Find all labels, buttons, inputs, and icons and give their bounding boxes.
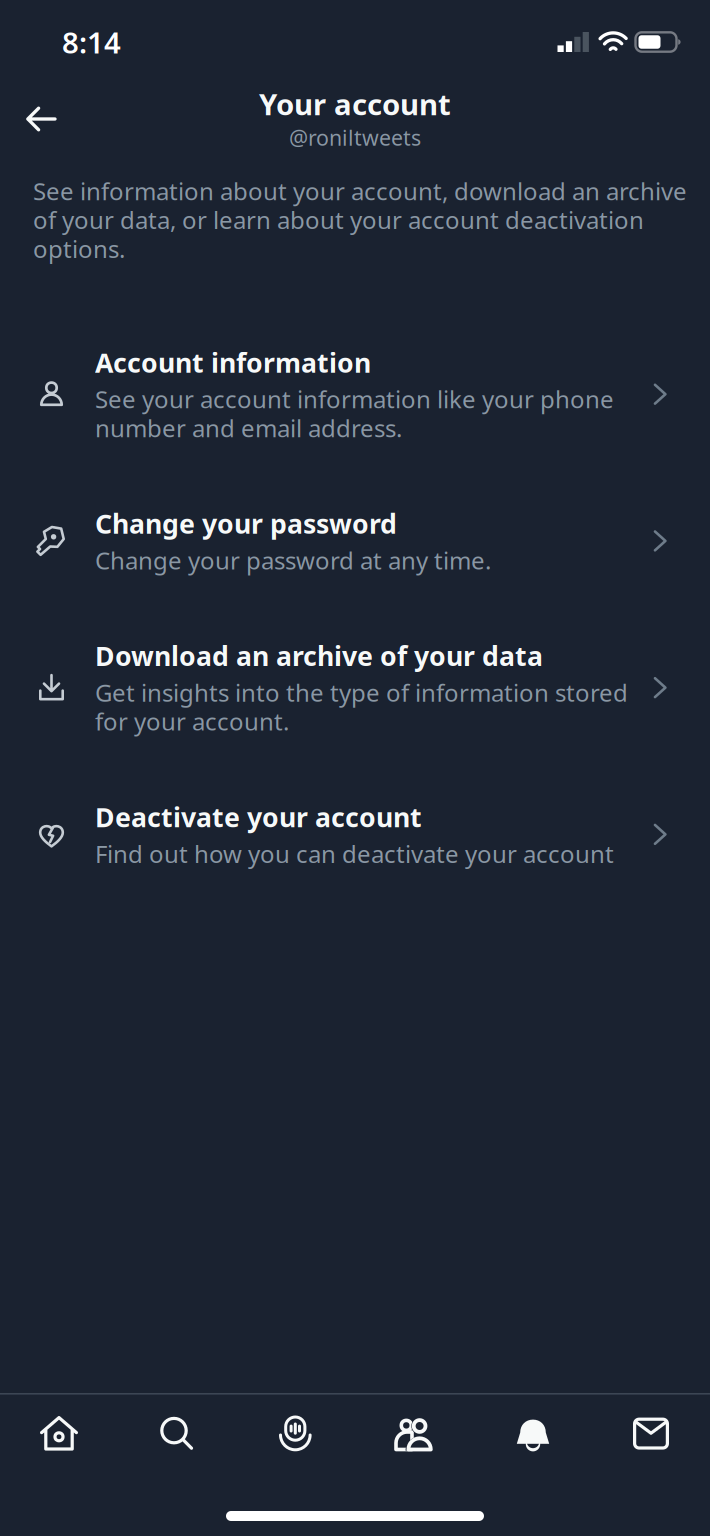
staticText: Your account [259,84,451,123]
button[interactable]: Back [0,91,77,147]
button[interactable]: Search [118,1395,236,1473]
staticText: @roniltweets [289,123,421,152]
staticText: Download an archive of your data [95,638,543,673]
button[interactable]: Messages [592,1395,710,1473]
button[interactable]: Account information [0,314,710,475]
button[interactable]: Download an archive of your data [0,607,710,768]
button[interactable]: Spaces [236,1395,355,1473]
button[interactable]: Change your password [0,475,710,607]
staticText: Change your password [95,506,397,541]
staticText: Account information [95,345,371,380]
staticText: See information about your account, down… [33,175,687,265]
staticText: See your account information like your p… [95,383,614,444]
staticText: Change your password at any time. [95,544,491,576]
button[interactable]: Deactivate your account [0,768,710,900]
staticText: Get insights into the type of informatio… [95,676,628,737]
staticText: 8:14 [62,22,121,61]
staticText: Find out how you can deactivate your acc… [95,838,614,869]
button[interactable]: Communities [355,1395,474,1473]
button[interactable]: Home [0,1395,118,1473]
staticText: Deactivate your account [95,799,422,835]
button[interactable]: Notifications [474,1395,592,1473]
